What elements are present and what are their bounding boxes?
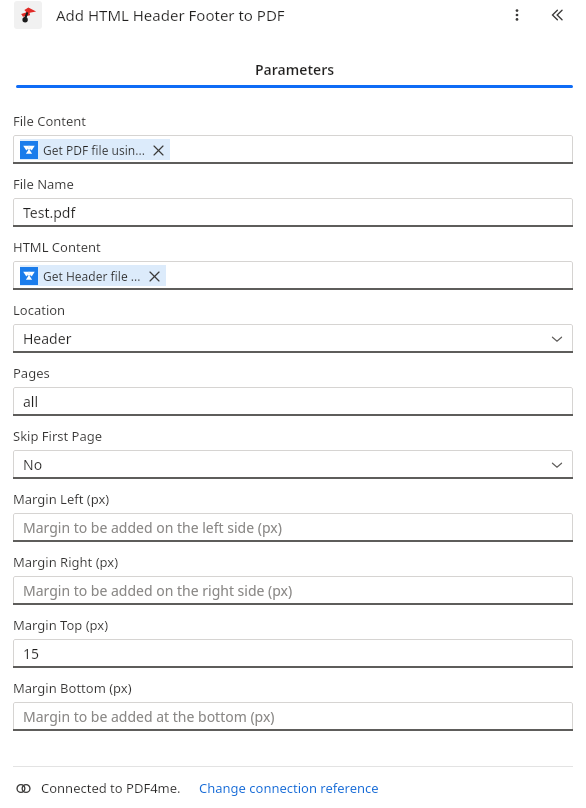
staticText: Change connection reference <box>199 779 379 797</box>
staticText: Margin Left (px) <box>13 490 110 508</box>
button[interactable]: Get Header file ... <box>13 261 573 290</box>
button[interactable]: Get PDF file usin... <box>13 135 573 164</box>
staticText: Margin Bottom (px) <box>13 679 132 697</box>
button[interactable]: Margin to be added on the right side (px… <box>13 576 573 605</box>
staticText: Margin Right (px) <box>13 553 119 571</box>
staticText: Get PDF file usin... <box>43 142 145 158</box>
staticText: Get Header file ... <box>43 268 141 284</box>
button[interactable]: Change connection reference <box>199 779 379 797</box>
staticText: Parameters <box>255 60 335 79</box>
button[interactable]: Collapse <box>542 0 572 30</box>
staticText: Connected to PDF4me. <box>41 779 181 797</box>
staticText: No <box>23 455 549 474</box>
staticText: File Name <box>13 175 74 193</box>
staticText: Test.pdf <box>23 203 565 222</box>
button[interactable]: Margin to be added on the left side (px) <box>13 513 573 542</box>
staticText: Skip First Page <box>13 427 103 445</box>
staticText: 15 <box>23 644 565 663</box>
button[interactable]: all <box>13 387 573 416</box>
button[interactable]: Get Header file ... <box>20 265 166 286</box>
staticText: Add HTML Header Footer to PDF <box>56 5 502 25</box>
button[interactable]: Margin to be added at the bottom (px) <box>13 702 573 731</box>
staticText: all <box>23 392 565 411</box>
button[interactable]: Test.pdf <box>13 198 573 227</box>
staticText: Margin Top (px) <box>13 616 109 634</box>
button[interactable]: No <box>13 450 573 479</box>
staticText: Pages <box>13 364 50 382</box>
staticText: Margin to be added on the left side (px) <box>23 518 565 537</box>
button[interactable]: Header <box>13 324 573 353</box>
staticText: Header <box>23 329 549 348</box>
staticText: File Content <box>13 112 87 130</box>
button[interactable]: Remove <box>151 143 165 157</box>
button[interactable]: 15 <box>13 639 573 668</box>
staticText: Margin to be added at the bottom (px) <box>23 707 565 726</box>
button[interactable]: Get PDF file usin... <box>20 139 170 160</box>
button[interactable]: Parameters <box>16 58 586 88</box>
button[interactable]: Remove <box>147 269 161 283</box>
staticText: Location <box>13 301 66 319</box>
staticText: Margin to be added on the right side (px… <box>23 581 565 600</box>
button[interactable]: More options <box>502 0 532 30</box>
staticText: HTML Content <box>13 238 101 256</box>
